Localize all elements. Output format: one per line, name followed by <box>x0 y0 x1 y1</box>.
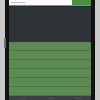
button[interactable] <box>9 69 91 78</box>
button[interactable] <box>9 42 91 51</box>
button[interactable] <box>9 87 91 96</box>
button[interactable] <box>9 60 91 69</box>
button[interactable]: Tab 1 <box>9 96 37 100</box>
button[interactable]: Tab 3 <box>64 96 91 100</box>
button[interactable] <box>9 51 91 60</box>
button[interactable] <box>9 78 91 87</box>
button[interactable]: Tab 2 <box>37 96 64 100</box>
button[interactable] <box>10 0 56 5</box>
